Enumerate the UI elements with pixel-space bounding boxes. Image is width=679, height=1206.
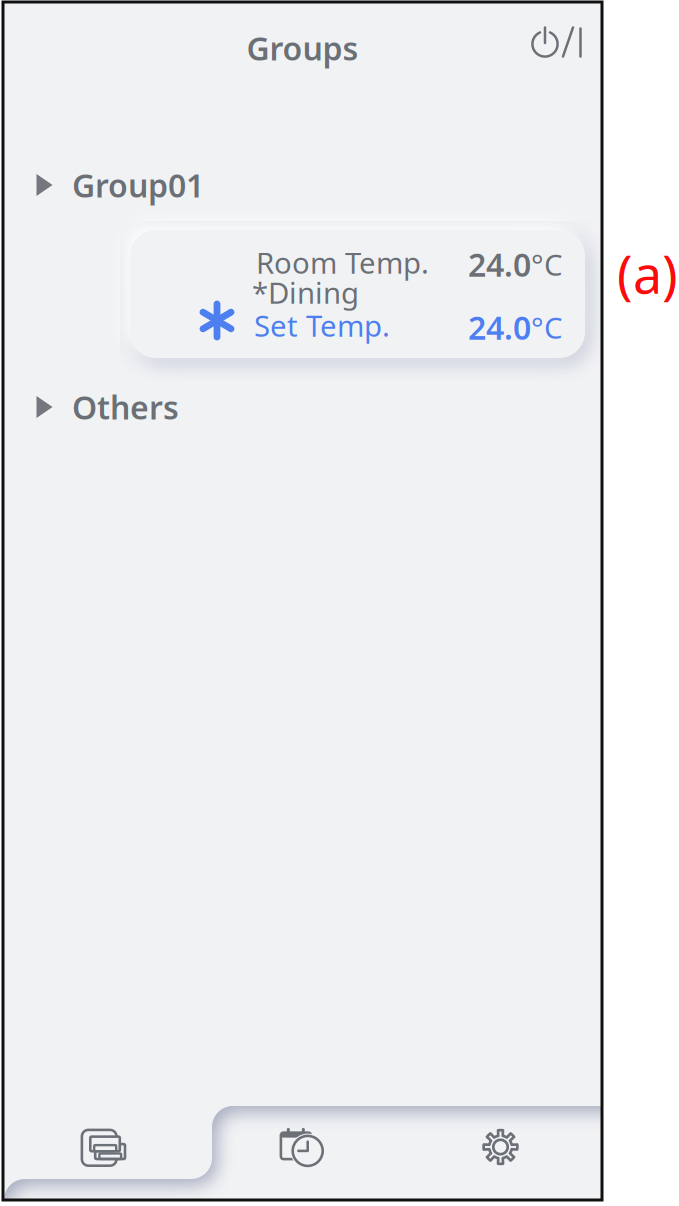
button[interactable]: Power: [516, 11, 597, 73]
button[interactable]: Settings: [402, 1081, 601, 1206]
button[interactable]: Schedule: [203, 1081, 402, 1206]
button[interactable]: Others: [4, 384, 601, 430]
staticText: 24.0: [468, 243, 531, 285]
staticText: °C: [531, 308, 563, 347]
staticText: Room Temp.: [256, 243, 429, 282]
staticText: Groups: [246, 27, 358, 69]
button[interactable]: Groups: [4, 1081, 203, 1206]
button[interactable]: Room Temp.: [130, 230, 585, 358]
staticText: °C: [531, 245, 563, 284]
button[interactable]: Group01: [4, 162, 601, 208]
staticText: Others: [72, 386, 179, 428]
staticText: Group01: [72, 164, 204, 206]
staticText: 24.0: [468, 306, 531, 348]
staticText: Set Temp.: [254, 306, 390, 345]
staticText: *Dining: [252, 273, 359, 312]
staticText: (a): [617, 239, 678, 308]
